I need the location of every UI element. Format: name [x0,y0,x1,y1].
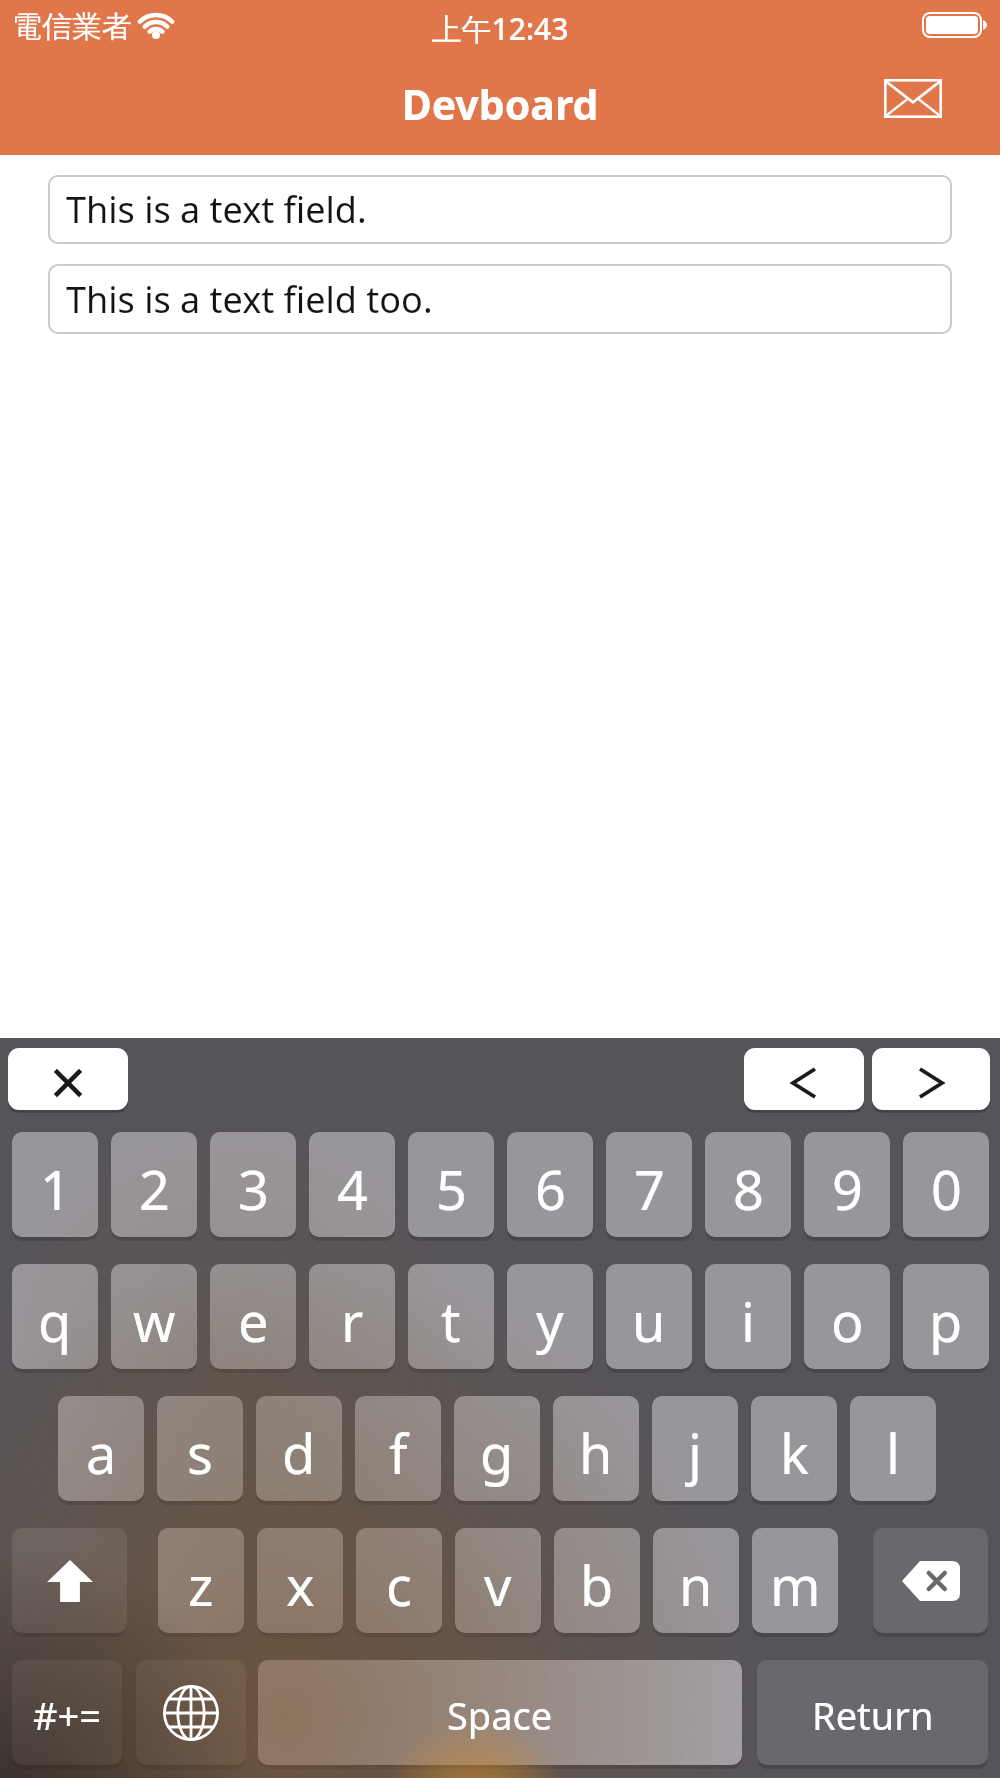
staticText: 6 [535,1152,566,1226]
staticText: 4 [337,1152,368,1226]
button[interactable]: This is a text field. [48,175,952,244]
button[interactable] [751,1396,837,1501]
staticText: c [386,1548,412,1622]
staticText: 2 [139,1152,170,1226]
button[interactable] [652,1396,738,1501]
button[interactable] [507,1132,593,1237]
button[interactable] [111,1264,197,1369]
staticText: Devboard [0,76,1000,132]
staticText: m [770,1548,821,1622]
staticText: This is a text field. [66,185,367,234]
staticText: Return [812,1689,934,1741]
staticText: o [831,1284,864,1358]
button[interactable] [257,1528,343,1633]
staticText: z [188,1548,214,1622]
staticText: f [389,1416,408,1490]
button[interactable] [356,1528,442,1633]
button[interactable] [705,1264,791,1369]
button[interactable] [653,1528,739,1633]
staticText: #+= [33,1689,102,1741]
staticText: s [187,1416,213,1490]
button[interactable] [757,1660,988,1765]
staticText: 7 [634,1152,665,1226]
button[interactable] [355,1396,441,1501]
button[interactable]: This is a text field too. [48,264,952,334]
button[interactable] [872,1048,990,1110]
button[interactable] [606,1264,692,1369]
staticText: w [133,1284,176,1358]
staticText: b [580,1548,614,1622]
button[interactable] [210,1132,296,1237]
button[interactable] [158,1528,244,1633]
staticText: p [929,1284,963,1358]
button[interactable] [850,1396,936,1501]
button[interactable] [705,1132,791,1237]
staticText: j [688,1416,702,1490]
button[interactable] [256,1396,342,1501]
button[interactable] [8,1048,128,1110]
staticText: y [536,1284,564,1358]
staticText: 電信業者 [12,8,132,46]
button[interactable] [408,1132,494,1237]
staticText: i [741,1284,755,1358]
staticText: x [286,1548,315,1622]
button[interactable] [210,1264,296,1369]
staticText: Space [447,1689,553,1741]
button[interactable] [804,1132,890,1237]
button[interactable] [309,1132,395,1237]
staticText: 1 [40,1152,71,1226]
staticText: g [480,1416,514,1490]
button[interactable] [258,1660,742,1765]
staticText: n [679,1548,713,1622]
staticText: 上午12:43 [0,8,1000,49]
staticText: q [38,1284,72,1358]
staticText: v [484,1548,512,1622]
button[interactable] [752,1528,838,1633]
button[interactable] [309,1264,395,1369]
button[interactable] [903,1132,989,1237]
button[interactable] [554,1528,640,1633]
staticText: 0 [931,1152,962,1226]
staticText: u [632,1284,666,1358]
button[interactable] [12,1660,122,1765]
button[interactable] [12,1528,127,1633]
button[interactable] [872,67,954,129]
button[interactable] [744,1048,864,1110]
staticText: l [886,1416,900,1490]
staticText: r [341,1284,364,1358]
staticText: h [579,1416,613,1490]
staticText: a [86,1416,117,1490]
button[interactable] [454,1396,540,1501]
button[interactable] [111,1132,197,1237]
staticText: 5 [436,1152,467,1226]
staticText: 8 [733,1152,764,1226]
staticText: 3 [238,1152,269,1226]
button[interactable] [903,1264,989,1369]
staticText: k [780,1416,809,1490]
button[interactable] [507,1264,593,1369]
staticText: d [282,1416,316,1490]
button[interactable] [12,1132,98,1237]
button[interactable] [408,1264,494,1369]
button[interactable] [12,1264,98,1369]
staticText: e [238,1284,269,1358]
button[interactable] [606,1132,692,1237]
button[interactable] [136,1660,246,1765]
button[interactable] [58,1396,144,1501]
button[interactable] [873,1528,988,1633]
staticText: t [441,1284,461,1358]
button[interactable] [157,1396,243,1501]
button[interactable] [553,1396,639,1501]
staticText: 9 [832,1152,863,1226]
button[interactable] [455,1528,541,1633]
staticText: This is a text field too. [66,275,433,324]
button[interactable] [804,1264,890,1369]
